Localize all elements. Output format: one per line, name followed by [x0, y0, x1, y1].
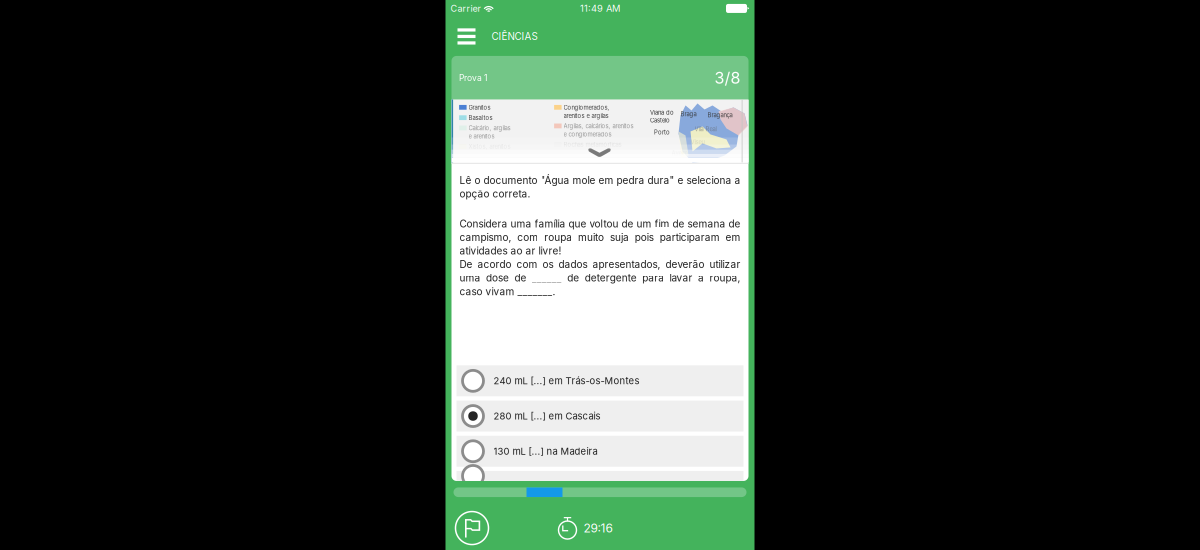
- staticText: dura": [647, 174, 674, 186]
- staticText: para: [642, 272, 664, 284]
- staticText: e conglomerados: [564, 131, 612, 138]
- staticText: Granitos: [469, 104, 491, 111]
- staticText: Vila Real: [694, 125, 716, 132]
- staticText: em: [598, 174, 613, 186]
- staticText: de: [621, 218, 633, 230]
- button[interactable]: Menu: [445, 22, 483, 50]
- staticText: Prova 1: [459, 73, 487, 83]
- staticText: a: [698, 272, 704, 284]
- staticText: e: [677, 174, 683, 186]
- staticText: semana: [687, 218, 725, 230]
- staticText: um: [636, 218, 651, 230]
- staticText: muito: [578, 231, 604, 243]
- staticText: Conglomerados,: [564, 104, 610, 111]
- staticText: que: [568, 218, 586, 230]
- staticText: Aveiro: [671, 149, 688, 156]
- staticText: de: [514, 272, 526, 284]
- staticText: acordo: [477, 258, 511, 270]
- staticText: fim: [654, 218, 669, 230]
- button[interactable]: 130 mL [...] na Madeira: [456, 436, 743, 467]
- staticText: Rochas metamórficas: [564, 141, 622, 148]
- staticText: de: [672, 218, 684, 230]
- staticText: opção correta.: [459, 188, 530, 200]
- staticText: 280 mL [...] em Cascais: [493, 410, 600, 422]
- staticText: Basaltos: [469, 114, 493, 121]
- staticText: Carrier: [450, 3, 480, 14]
- staticText: Lê: [459, 174, 471, 186]
- staticText: De: [459, 258, 472, 270]
- staticText: CIÊNCIAS: [491, 30, 537, 42]
- staticText: 3/8: [714, 68, 740, 88]
- staticText: campismo,: [459, 231, 511, 243]
- staticText: roupa: [544, 231, 572, 243]
- staticText: caso vivam _______.: [459, 285, 555, 297]
- staticText: com: [517, 231, 538, 243]
- staticText: dados: [558, 258, 587, 270]
- staticText: com: [516, 258, 537, 270]
- staticText: arenitos e argilas: [564, 112, 609, 119]
- staticText: detergente: [585, 272, 637, 284]
- staticText: 11:49 AM: [580, 3, 620, 14]
- staticText: pois: [635, 231, 654, 243]
- staticText: o: [474, 174, 480, 186]
- staticText: pedra: [616, 174, 644, 186]
- staticText: em: [725, 231, 740, 243]
- staticText: utilizar: [709, 258, 740, 270]
- staticText: Castelo: [650, 117, 670, 124]
- staticText: Porto: [654, 129, 670, 136]
- staticText: uma: [459, 272, 480, 284]
- staticText: participaram: [660, 231, 720, 243]
- staticText: roupa,: [709, 272, 740, 284]
- staticText: Considera: [459, 218, 507, 230]
- staticText: lavar: [670, 272, 693, 284]
- staticText: Viseu: [690, 138, 704, 145]
- staticText: voltou: [589, 218, 618, 230]
- staticText: suja: [610, 231, 629, 243]
- staticText: documento: [483, 174, 537, 186]
- staticText: Argilas, calcários, arenitos: [564, 122, 634, 130]
- staticText: dose: [486, 272, 509, 284]
- button[interactable]: Flag question: [455, 512, 488, 545]
- staticText: Calcário, argilas: [469, 124, 511, 132]
- staticText: "Água: [540, 174, 569, 186]
- staticText: atividades ao ar livre!: [459, 245, 561, 257]
- staticText: 240 mL [...] em Trás-os-Montes: [493, 375, 639, 387]
- staticText: mole: [572, 174, 595, 186]
- staticText: 29:16: [583, 521, 612, 535]
- staticText: apresentados,: [592, 258, 660, 270]
- staticText: uma: [510, 218, 531, 230]
- staticText: deverão: [665, 258, 704, 270]
- staticText: de: [567, 272, 579, 284]
- staticText: e arenitos: [469, 133, 495, 140]
- staticText: Viana do: [650, 109, 674, 116]
- button[interactable]: [456, 471, 743, 481]
- staticText: seleciona: [686, 174, 731, 186]
- staticText: Bragança: [707, 111, 732, 118]
- button[interactable]: 280 mL [...] em Cascais: [456, 400, 743, 431]
- staticText: de: [728, 218, 740, 230]
- staticText: Braga: [680, 110, 696, 117]
- staticText: Xistos, arenitos: [469, 143, 511, 150]
- staticText: 130 mL [...] na Madeira: [493, 445, 597, 457]
- staticText: a: [734, 174, 740, 186]
- button[interactable]: 240 mL [...] em Trás-os-Montes: [456, 365, 743, 396]
- staticText: família: [534, 218, 565, 230]
- staticText: ______: [532, 272, 562, 284]
- staticText: os: [542, 258, 553, 270]
